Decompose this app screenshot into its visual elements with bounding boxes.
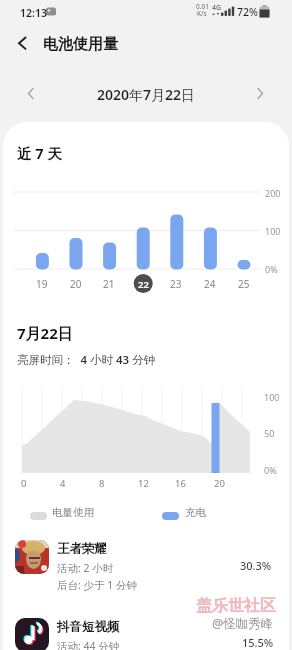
- staticText: 抖音短视频: [57, 619, 120, 635]
- staticText: 25: [238, 277, 250, 291]
- staticText: 4G: [212, 3, 222, 13]
- staticText: 亮屏时间： 4 小时 43 分钟: [17, 352, 156, 368]
- button[interactable]: [250, 83, 272, 105]
- staticText: 23: [170, 277, 182, 291]
- staticText: 50: [264, 427, 275, 439]
- staticText: 王者荣耀: [57, 541, 107, 557]
- staticText: 72%: [237, 5, 258, 19]
- staticText: K/s: [197, 9, 207, 18]
- button[interactable]: [0, 532, 292, 596]
- staticText: 电量使用: [52, 506, 94, 519]
- staticText: @怪咖秀峰: [212, 615, 274, 632]
- staticText: 7月22日: [17, 323, 73, 343]
- button[interactable]: [20, 83, 42, 105]
- staticText: 20: [214, 477, 225, 490]
- staticText: 0%: [265, 263, 278, 275]
- staticText: 盖乐世社区: [196, 596, 276, 616]
- staticText: 20: [70, 277, 82, 291]
- staticText: 12:13: [20, 6, 47, 20]
- staticText: 24: [204, 277, 216, 291]
- staticText: 21: [103, 277, 115, 291]
- staticText: 2020年7月22日: [97, 85, 196, 104]
- staticText: 8: [99, 477, 105, 490]
- button[interactable]: [0, 610, 292, 650]
- staticText: 活动: 2 小时: [57, 561, 114, 575]
- staticText: 100: [264, 391, 280, 403]
- staticText: 12: [138, 477, 149, 490]
- staticText: 22: [138, 278, 149, 291]
- staticText: 4: [60, 477, 66, 490]
- staticText: 电池使用量: [43, 35, 118, 54]
- staticText: 30.3%: [240, 558, 272, 573]
- staticText: 0.01: [196, 2, 209, 11]
- staticText: 活动: 44 分钟: [57, 639, 120, 650]
- staticText: 16: [175, 477, 186, 490]
- staticText: 近 7 天: [17, 143, 62, 163]
- staticText: 19: [36, 277, 48, 291]
- staticText: 0%: [264, 464, 277, 476]
- staticText: 200: [265, 187, 281, 199]
- button[interactable]: [12, 33, 36, 57]
- staticText: 后台: 少于 1 分钟: [57, 578, 138, 592]
- staticText: 0: [21, 477, 27, 490]
- staticText: 15.5%: [242, 635, 274, 650]
- staticText: 充电: [185, 506, 206, 519]
- staticText: 100: [265, 225, 281, 237]
